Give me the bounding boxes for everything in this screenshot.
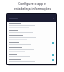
- button[interactable]: List item: [9, 35, 54, 41]
- staticText: estabeleça informações: [14, 7, 51, 11]
- button[interactable]: App header: [7, 14, 56, 22]
- button[interactable]: Status indicator: [52, 54, 54, 56]
- button[interactable]: List item: [9, 54, 54, 58]
- button[interactable]: List item: [9, 47, 54, 53]
- button[interactable]: List item: [9, 30, 54, 34]
- button[interactable]: Status indicator: [52, 42, 54, 44]
- button[interactable]: List item: [9, 42, 54, 46]
- staticText: Configure o app e: [18, 2, 46, 6]
- button[interactable]: Status indicator: [52, 59, 54, 61]
- button[interactable]: List item: [9, 59, 54, 63]
- button[interactable]: List item: [9, 23, 54, 29]
